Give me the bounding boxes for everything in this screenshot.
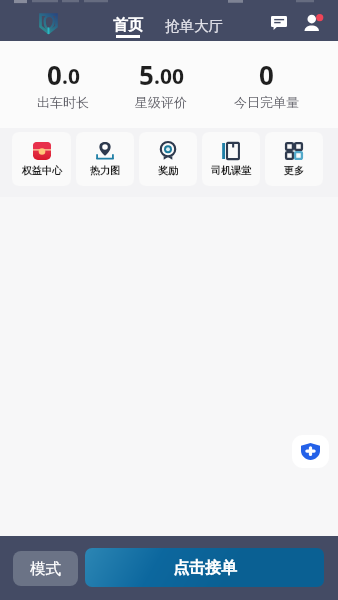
staticText: 权益中心 [22,164,62,177]
staticText: 首页 [113,16,143,35]
staticText: 奖励 [158,164,178,177]
staticText: 司机课堂 [211,164,251,177]
staticText: 点击接单 [173,558,237,578]
button[interactable]: 0 [216,57,316,111]
staticText: 热力图 [90,164,120,177]
staticText: 星级评价 [135,94,187,110]
button[interactable]: 0 [13,57,113,111]
button[interactable]: Messages [264,9,294,37]
button[interactable]: 奖励 [139,132,197,186]
staticText: 更多 [284,164,304,177]
button[interactable]: 更多 [265,132,323,186]
staticText: 0 [47,57,62,92]
button[interactable]: 权益中心 [12,132,71,186]
staticText: 0 [259,57,274,92]
button[interactable]: 热力图 [76,132,134,186]
button[interactable]: Safety center [292,435,329,468]
button[interactable]: 点击接单 [85,548,324,587]
staticText: 5 [139,57,154,92]
staticText: .00 [154,62,184,91]
staticText: 出车时长 [37,94,89,110]
button[interactable]: 司机课堂 [202,132,260,186]
staticText: .0 [62,62,80,91]
button[interactable]: 首页 [106,6,150,41]
staticText: 抢单大厅 [165,17,223,35]
button[interactable]: 5 [111,57,211,111]
staticText: 模式 [30,559,61,579]
staticText: 今日完单量 [234,94,299,110]
button[interactable]: 模式 [13,551,78,586]
button[interactable]: 抢单大厅 [157,6,231,41]
button[interactable]: Profile [297,8,327,36]
